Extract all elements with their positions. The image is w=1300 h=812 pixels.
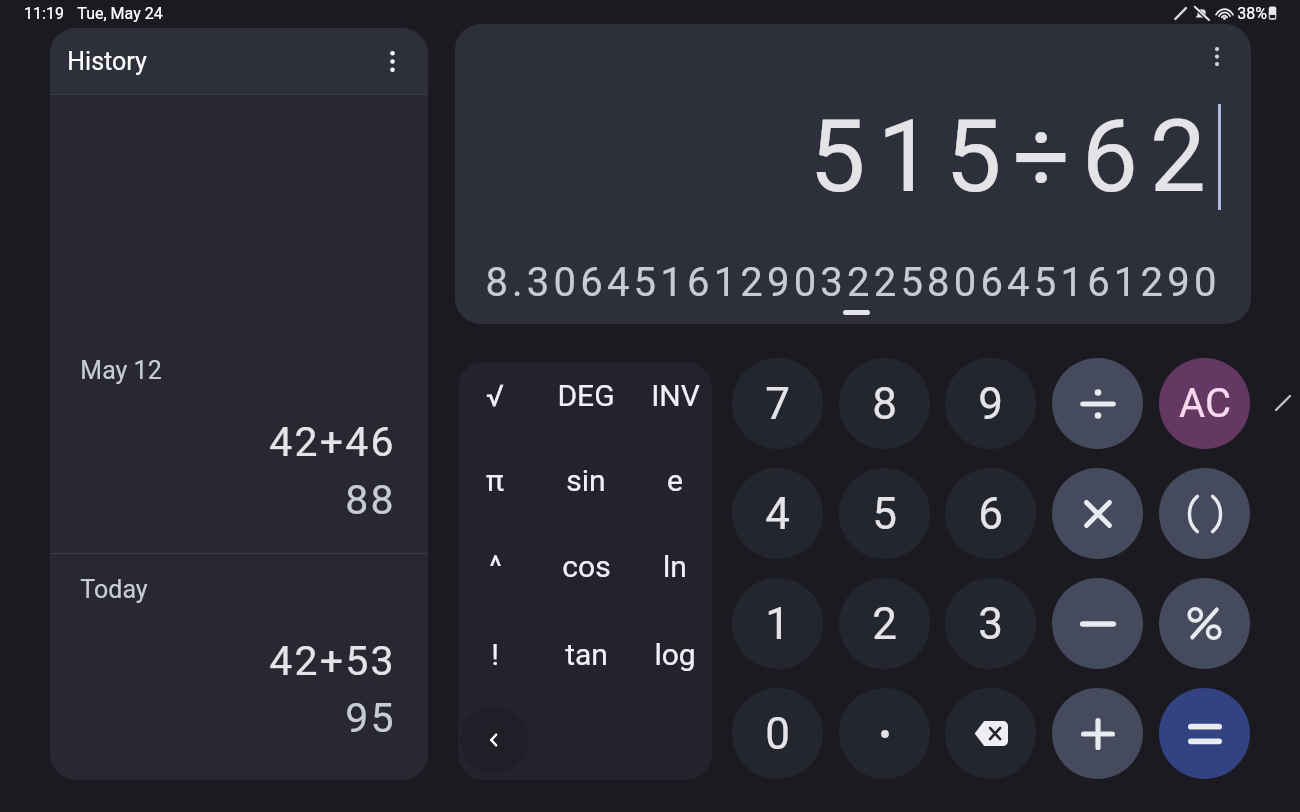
staticText: 2	[872, 598, 897, 650]
staticText: History	[67, 47, 147, 76]
button[interactable]: Parentheses	[1159, 468, 1250, 559]
staticText: 42+46	[269, 418, 396, 466]
staticText: Tue, May 24	[77, 4, 163, 23]
staticText: 5	[872, 488, 897, 540]
button[interactable]: Delete	[945, 688, 1036, 779]
staticText: ln	[663, 549, 687, 584]
staticText: e	[667, 463, 683, 498]
button[interactable]: DEG	[544, 362, 628, 433]
button[interactable]: sin	[544, 442, 628, 518]
button[interactable]: 4	[732, 468, 823, 559]
staticText: !	[491, 637, 499, 672]
button[interactable]: e	[633, 442, 712, 518]
button[interactable]: Multiply	[1052, 468, 1143, 559]
button[interactable]: Equals	[1159, 688, 1250, 779]
button[interactable]: π	[458, 442, 537, 518]
button[interactable]: 1	[732, 578, 823, 669]
staticText: INV	[651, 378, 700, 413]
button[interactable]: 5	[839, 468, 930, 559]
button[interactable]: More options	[1195, 34, 1239, 78]
button[interactable]: 7	[732, 358, 823, 449]
button[interactable]: 9	[945, 358, 1036, 449]
staticText: 42+53	[269, 637, 396, 685]
staticText: AC	[1179, 380, 1231, 427]
staticText: 38%	[1237, 4, 1267, 23]
staticText: 6	[978, 488, 1003, 540]
button[interactable]: AC	[1159, 358, 1250, 449]
staticText: tan	[565, 637, 608, 672]
staticText: 3	[978, 598, 1003, 650]
button[interactable]: INV	[633, 362, 712, 433]
staticText: Today	[80, 575, 148, 604]
staticText: 8.30645161290322580645161290	[485, 259, 1221, 306]
staticText: DEG	[557, 378, 615, 413]
staticText: π	[486, 463, 504, 498]
staticText: 515÷62	[809, 98, 1218, 215]
button[interactable]: 2	[839, 578, 930, 669]
button[interactable]: ^	[458, 528, 537, 604]
button[interactable]: More options	[372, 41, 412, 81]
staticText: 9	[978, 378, 1003, 430]
button[interactable]: ln	[633, 528, 712, 604]
staticText: ^	[489, 549, 502, 584]
staticText: 11:19	[24, 4, 64, 23]
button[interactable]: tan	[544, 616, 628, 692]
button[interactable]: Plus	[1052, 688, 1143, 779]
button[interactable]: Divide	[1052, 358, 1143, 449]
staticText: cos	[562, 549, 611, 584]
staticText: 0	[765, 708, 790, 760]
button[interactable]: 6	[945, 468, 1036, 559]
button[interactable]: log	[633, 616, 712, 692]
button[interactable]: Minus	[1052, 578, 1143, 669]
staticText: May 12	[80, 356, 162, 385]
staticText: sin	[566, 463, 606, 498]
button[interactable]	[839, 688, 930, 779]
staticText: 8	[872, 378, 897, 430]
button[interactable]: Percent	[1159, 578, 1250, 669]
button[interactable]: √	[458, 362, 537, 433]
staticText: 88	[345, 476, 396, 524]
button[interactable]: Previous page	[460, 706, 528, 774]
staticText: 1	[765, 598, 790, 650]
button[interactable]: 0	[732, 688, 823, 779]
staticText: 7	[765, 378, 790, 430]
staticText: log	[654, 637, 696, 672]
button[interactable]: 3	[945, 578, 1036, 669]
staticText: 95	[345, 694, 396, 742]
button[interactable]: 8	[839, 358, 930, 449]
button[interactable]: cos	[544, 528, 628, 604]
staticText: √	[486, 378, 504, 413]
staticText: 4	[765, 488, 790, 540]
button[interactable]: !	[458, 616, 537, 692]
